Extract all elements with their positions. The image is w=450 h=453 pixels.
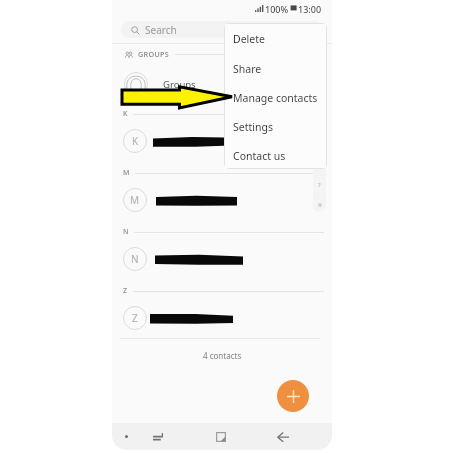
- staticText: Z: [132, 311, 138, 325]
- staticText: Contact us: [233, 149, 286, 163]
- button[interactable]: K: [112, 125, 332, 157]
- button[interactable]: Manage contacts: [224, 82, 327, 111]
- staticText: Share: [233, 62, 262, 76]
- staticText: Delete: [233, 32, 265, 46]
- button[interactable]: Home: [207, 423, 235, 450]
- staticText: M: [123, 168, 130, 178]
- button[interactable]: Delete: [224, 23, 327, 53]
- staticText: M: [317, 161, 323, 169]
- staticText: Settings: [233, 120, 273, 134]
- button[interactable]: Back: [269, 423, 297, 450]
- button[interactable]: Index: [313, 32, 326, 212]
- staticText: ?: [318, 181, 321, 189]
- staticText: Manage contacts: [233, 91, 318, 105]
- button[interactable]: Groups: [112, 68, 332, 100]
- staticText: N: [131, 252, 139, 266]
- staticText: K: [123, 109, 128, 119]
- staticText: M: [130, 193, 140, 207]
- staticText: Z: [123, 286, 128, 296]
- staticText: N: [123, 227, 129, 237]
- button[interactable]: N: [112, 243, 332, 275]
- button[interactable]: Add contact: [277, 380, 309, 412]
- staticText: Search: [145, 23, 177, 37]
- button[interactable]: Settings: [224, 111, 327, 140]
- staticText: K: [132, 134, 139, 148]
- staticText: 4 contacts: [203, 350, 242, 361]
- staticText: #: [318, 201, 322, 209]
- staticText: 100%: [265, 3, 289, 13]
- staticText: 13:00: [298, 3, 322, 13]
- button[interactable]: Recent apps: [144, 423, 172, 450]
- button[interactable]: Search: [121, 21, 323, 38]
- staticText: GROUPS: [138, 49, 170, 59]
- button[interactable]: Z: [112, 302, 332, 334]
- button[interactable]: Contact us: [224, 140, 327, 169]
- staticText: Groups: [163, 78, 196, 91]
- button[interactable]: Menu: [115, 423, 137, 450]
- button[interactable]: M: [112, 184, 332, 216]
- button[interactable]: Share: [224, 53, 327, 82]
